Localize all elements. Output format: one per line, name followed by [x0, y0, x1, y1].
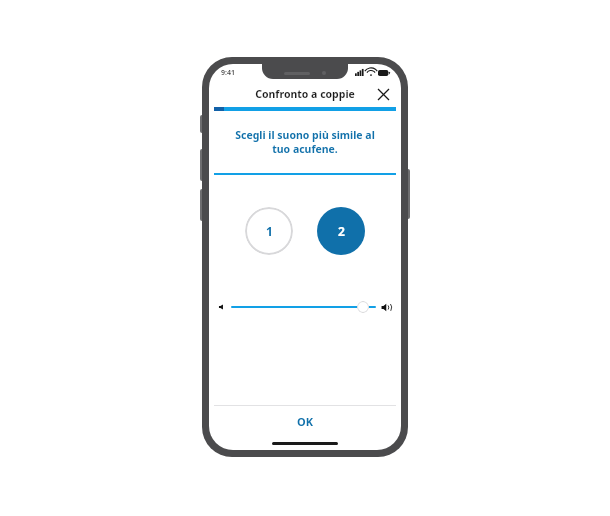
staticText: 9:41 — [221, 68, 235, 78]
button[interactable] — [231, 298, 376, 316]
button[interactable]: 1 — [245, 207, 293, 255]
button[interactable]: 2 — [317, 207, 365, 255]
button[interactable]: OK — [209, 406, 401, 436]
staticText: Scegli il suono più simile al tuo acufen… — [235, 128, 375, 156]
button[interactable]: Chiudi — [373, 84, 393, 104]
staticText: Confronto a coppie — [255, 87, 355, 101]
other: Volume basso — [218, 303, 226, 311]
staticText: 2 — [338, 223, 345, 239]
staticText: 1 — [266, 223, 273, 239]
other: Volume alto — [381, 302, 392, 313]
staticText: OK — [297, 414, 314, 429]
